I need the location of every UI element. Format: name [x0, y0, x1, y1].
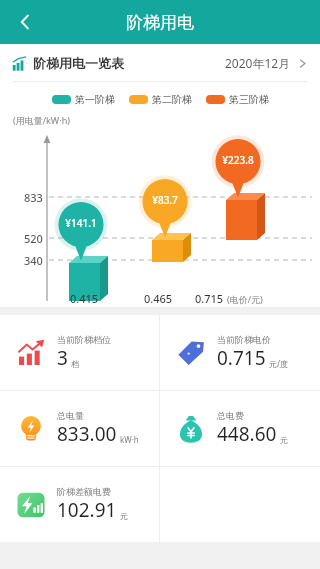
staticText: 元/度: [269, 358, 288, 369]
staticText: 0.715: [217, 345, 266, 371]
staticText: 元: [280, 435, 288, 445]
staticText: kW·h: [120, 434, 139, 445]
staticText: 第三阶梯: [229, 93, 269, 106]
staticText: 当前阶梯档位: [57, 334, 111, 345]
staticText: 第一阶梯: [75, 93, 115, 106]
staticText: 阶梯用电: [126, 12, 194, 33]
staticText: 第二阶梯: [152, 93, 192, 106]
button[interactable]: Back: [6, 3, 44, 41]
staticText: 总电量: [57, 410, 84, 421]
staticText: 2020年12月: [225, 55, 291, 71]
button[interactable]: 当前阶梯电价: [160, 315, 320, 390]
staticText: 当前阶梯电价: [217, 334, 271, 345]
staticText: ¥83.7: [141, 193, 189, 207]
staticText: 阶梯用电一览表: [33, 55, 124, 71]
staticText: 0.415: [70, 291, 99, 306]
staticText: 833.00: [57, 421, 117, 447]
button[interactable]: 总电费: [160, 391, 320, 466]
button[interactable]: 当前阶梯档位: [0, 315, 159, 390]
staticText: 0.465: [144, 291, 173, 306]
staticText: 档: [71, 359, 79, 369]
staticText: (用电量/kW·h): [13, 114, 70, 126]
staticText: ¥141.1: [57, 216, 105, 230]
button[interactable]: 总电量: [0, 391, 159, 466]
staticText: 340: [24, 253, 43, 268]
staticText: 3: [57, 345, 68, 371]
staticText: 阶梯差额电费: [57, 486, 111, 497]
button[interactable]: 阶梯差额电费: [0, 467, 159, 542]
staticText: ¥223.8: [214, 153, 262, 167]
staticText: 总电费: [217, 410, 244, 421]
staticText: 833: [24, 190, 43, 205]
staticText: 元: [120, 511, 128, 521]
staticText: 102.91: [57, 497, 117, 523]
staticText: (电价/元): [227, 293, 263, 305]
button[interactable]: 阶梯用电一览表: [0, 44, 320, 82]
staticText: 448.60: [217, 421, 277, 447]
staticText: 0.715: [195, 291, 224, 306]
staticText: 520: [24, 231, 43, 246]
